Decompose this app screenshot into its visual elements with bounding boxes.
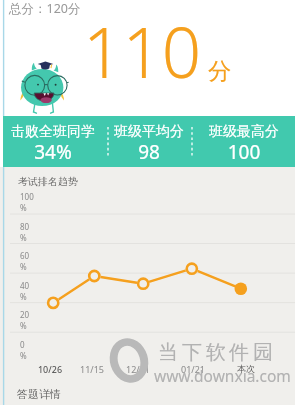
button[interactable]: 答题详情: [17, 387, 61, 401]
other: Mascot: [16, 56, 68, 116]
staticText: 12/11: [113, 363, 163, 375]
staticText: 10/26: [25, 363, 75, 375]
staticText: 总分：120分: [9, 0, 81, 17]
staticText: 11/15: [67, 363, 117, 375]
staticText: %: [20, 320, 27, 331]
staticText: %: [20, 291, 27, 302]
staticText: 98: [101, 139, 197, 165]
staticText: 考试排名趋势: [18, 175, 78, 188]
staticText: 20: [20, 309, 30, 320]
staticText: 击败全班同学: [5, 123, 101, 141]
staticText: 100: [20, 191, 34, 202]
staticText: 40: [20, 280, 30, 291]
staticText: %: [20, 232, 27, 243]
staticText: 60: [20, 250, 30, 261]
staticText: 01/21: [168, 363, 218, 375]
button[interactable]: 班级最高分: [196, 116, 292, 167]
staticText: 园: [253, 340, 273, 365]
staticText: 班级最高分: [196, 123, 292, 141]
staticText: 软: [206, 340, 226, 365]
button[interactable]: 击败全班同学: [5, 116, 101, 167]
staticText: 100: [196, 139, 292, 165]
staticText: 下: [182, 340, 202, 365]
staticText: 分: [208, 57, 231, 86]
staticText: 本次: [221, 363, 271, 374]
staticText: %: [20, 261, 27, 272]
staticText: 34%: [5, 139, 101, 165]
staticText: %: [20, 350, 27, 361]
staticText: 件: [229, 340, 249, 365]
staticText: 110: [83, 4, 202, 98]
staticText: 80: [20, 221, 30, 232]
staticText: 班级平均分: [101, 123, 197, 141]
staticText: 当: [158, 340, 178, 365]
staticText: %: [20, 202, 27, 213]
button[interactable]: 班级平均分: [101, 116, 197, 167]
staticText: 0: [20, 339, 25, 350]
staticText: www.downxia.com: [154, 365, 291, 386]
